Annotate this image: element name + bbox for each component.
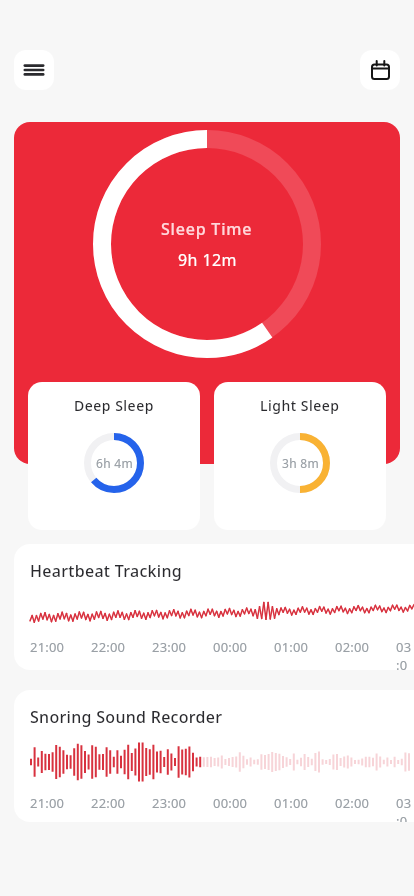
staticText: 23:00 <box>152 638 187 656</box>
staticText: 03:00 <box>396 638 414 670</box>
staticText: 00:00 <box>213 638 248 656</box>
staticText: Light Sleep <box>260 396 340 415</box>
staticText: 22:00 <box>91 638 126 656</box>
staticText: 01:00 <box>274 638 309 656</box>
staticText: 6h 4m <box>96 455 133 471</box>
button[interactable]: Deep Sleep <box>28 382 200 530</box>
button[interactable]: Snoring Sound Recorder <box>14 690 414 822</box>
staticText: 03:00 <box>396 794 414 822</box>
staticText: Snoring Sound Recorder <box>30 706 223 728</box>
button[interactable]: Menu <box>14 50 54 90</box>
staticText: 00:00 <box>213 794 248 812</box>
staticText: 21:00 <box>30 794 65 812</box>
staticText: 3h 8m <box>282 455 319 471</box>
staticText: 22:00 <box>91 794 126 812</box>
staticText: Sleep Time <box>161 218 253 240</box>
staticText: 02:00 <box>335 638 370 656</box>
button[interactable]: Heartbeat Tracking <box>14 544 414 670</box>
staticText: 23:00 <box>152 794 187 812</box>
button[interactable]: Light Sleep <box>214 382 386 530</box>
button[interactable]: Sleep Time <box>14 122 400 464</box>
staticText: 02:00 <box>335 794 370 812</box>
staticText: 9h 12m <box>178 249 237 271</box>
staticText: 01:00 <box>274 794 309 812</box>
button[interactable]: Calendar <box>360 50 400 90</box>
staticText: Heartbeat Tracking <box>30 560 183 582</box>
staticText: Deep Sleep <box>74 396 154 415</box>
staticText: 21:00 <box>30 638 65 656</box>
